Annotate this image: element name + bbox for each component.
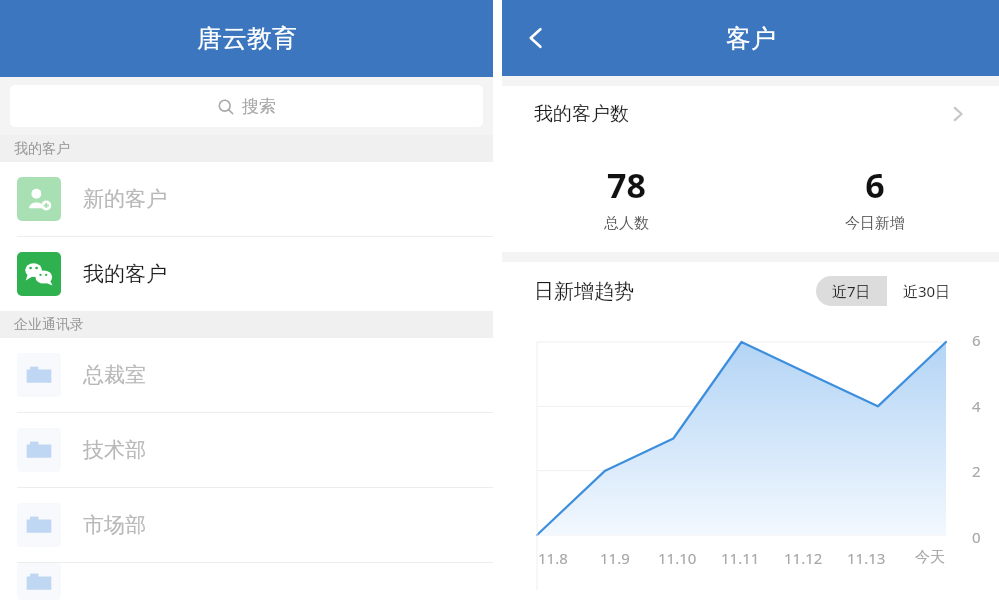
staticText: 搜索	[242, 96, 276, 117]
staticText: 4	[972, 396, 981, 416]
staticText: 11.9	[600, 548, 630, 568]
staticText: 今天	[915, 548, 945, 567]
button[interactable]: 近30日	[887, 276, 967, 306]
staticText: 近30日	[903, 281, 951, 301]
button[interactable]: 市场部	[0, 488, 493, 562]
staticText: 11.10	[658, 548, 697, 568]
staticText: 11.13	[847, 548, 886, 568]
staticText: 0	[972, 527, 981, 547]
staticText: 我的客户数	[534, 102, 629, 126]
staticText: 今日新增	[845, 214, 905, 233]
staticText: 11.12	[784, 548, 823, 568]
button[interactable]: Back	[514, 16, 558, 60]
staticText: 技术部	[83, 437, 146, 463]
staticText: 企业通讯录	[14, 316, 84, 334]
staticText: 唐云教育	[197, 23, 297, 54]
staticText: 总裁室	[83, 362, 146, 388]
staticText: 11.8	[538, 548, 568, 568]
staticText: 78	[607, 162, 646, 208]
staticText: 我的客户	[14, 140, 70, 158]
staticText: 6	[972, 330, 981, 350]
staticText: 新的客户	[83, 186, 167, 212]
staticText: 日新增趋势	[534, 279, 634, 304]
button[interactable]: 新的客户	[0, 162, 493, 236]
button[interactable]	[0, 563, 493, 600]
staticText: 6	[865, 162, 885, 208]
staticText: 总人数	[604, 214, 649, 233]
button[interactable]: 我的客户数	[502, 86, 999, 142]
staticText: 2	[972, 461, 981, 481]
staticText: 市场部	[83, 512, 146, 538]
staticText: 我的客户	[83, 261, 167, 287]
button[interactable]: 技术部	[0, 413, 493, 487]
button[interactable]: 搜索	[10, 85, 483, 127]
button[interactable]: 我的客户	[0, 237, 493, 311]
staticText: 客户	[726, 23, 776, 54]
button[interactable]: 近7日	[816, 276, 887, 306]
button[interactable]: 总裁室	[0, 338, 493, 412]
staticText: 11.11	[721, 548, 760, 568]
staticText: 近7日	[832, 281, 871, 301]
